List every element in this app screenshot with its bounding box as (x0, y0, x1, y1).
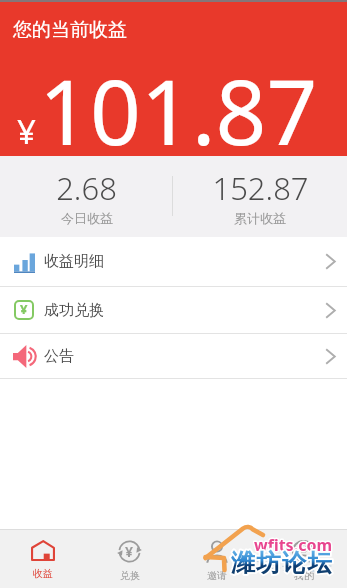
staticText: 收益明细 (44, 252, 104, 271)
staticText: wfits.com (254, 534, 332, 556)
staticText: 152.87 (212, 167, 309, 209)
staticText: 我的 (294, 569, 314, 582)
staticText: 您的当前收益 (13, 18, 127, 42)
staticText: 今日收益 (61, 210, 113, 226)
staticText: 潍坊论坛 (231, 557, 334, 574)
staticText: ¥ (17, 109, 36, 154)
button[interactable]: 邀请 (173, 530, 260, 588)
button[interactable]: 我的 (260, 530, 347, 588)
staticText: wfits.com (254, 534, 332, 556)
button[interactable]: 2.68 (0, 156, 173, 237)
staticText: ¥ (20, 300, 28, 318)
staticText: 潍坊论坛 (231, 548, 334, 578)
staticText: 累计收益 (234, 210, 286, 226)
button[interactable]: 收益明细 (0, 237, 347, 286)
staticText: 成功兑换 (44, 301, 104, 320)
button[interactable]: 公告 (0, 334, 347, 378)
button[interactable]: ¥ (86, 530, 173, 588)
button[interactable]: 152.87 (173, 156, 347, 237)
staticText: 2.68 (56, 167, 117, 209)
staticText: 兑换 (120, 569, 140, 582)
staticText: 公告 (44, 347, 74, 366)
button[interactable]: 收益 (0, 530, 86, 588)
button[interactable]: 成功兑换 (0, 287, 347, 333)
staticText: ¥ (125, 542, 134, 561)
staticText: 潍坊论坛 (231, 548, 334, 578)
staticText: 收益 (33, 567, 53, 580)
staticText: 邀请 (207, 569, 227, 582)
staticText: 101.87 (39, 50, 318, 171)
